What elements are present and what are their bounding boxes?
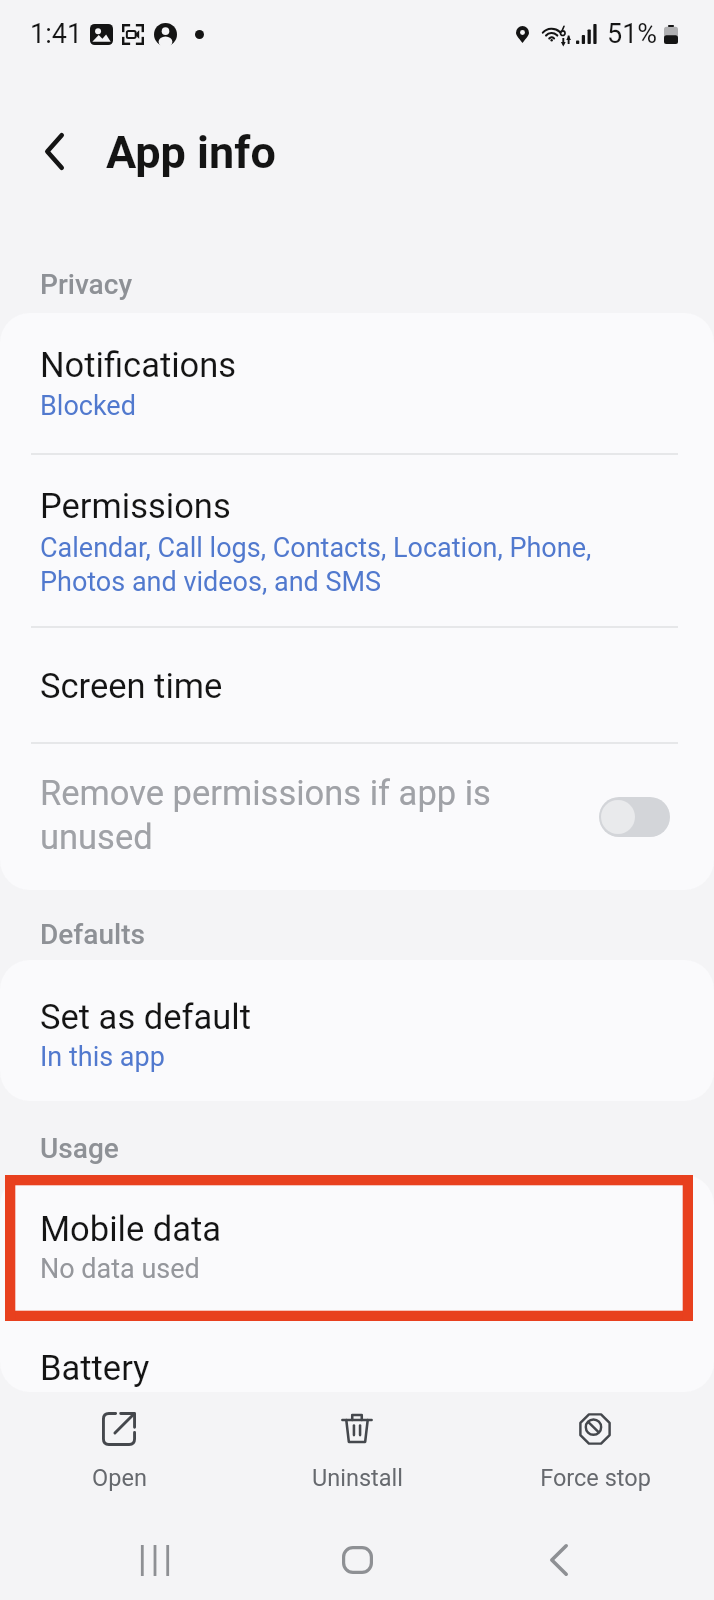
button[interactable]: Set as default	[0, 960, 714, 1101]
staticText: 1:41	[30, 18, 83, 50]
staticText: No data used	[40, 1253, 200, 1285]
staticText: Usage	[40, 1132, 119, 1165]
staticText: Open	[92, 1464, 147, 1492]
staticText: Screen time	[40, 666, 223, 706]
staticText: Privacy	[40, 268, 133, 301]
staticText: Defaults	[40, 918, 145, 951]
staticText: Blocked	[40, 390, 136, 422]
staticText: Calendar, Call logs, Contacts, Location,…	[40, 532, 592, 598]
button[interactable]: Remove permissions if app is unused	[0, 744, 714, 890]
staticText: Battery	[40, 1348, 150, 1388]
button[interactable]: Uninstall	[238, 1392, 476, 1512]
button[interactable]: Recents	[110, 1516, 200, 1600]
button[interactable]: Force stop	[476, 1392, 714, 1512]
staticText: Uninstall	[312, 1464, 403, 1492]
staticText: Mobile data	[40, 1209, 222, 1249]
staticText: Permissions	[40, 486, 231, 526]
button[interactable]: Mobile data	[0, 1175, 714, 1316]
button[interactable]: Back	[0, 97, 108, 205]
staticText: 51%	[607, 18, 658, 50]
button[interactable]: Back	[514, 1516, 604, 1600]
staticText: Set as default	[40, 997, 251, 1037]
button[interactable]: Screen time	[0, 628, 714, 742]
button[interactable]: Battery	[0, 1318, 714, 1392]
staticText: In this app	[40, 1041, 165, 1073]
button[interactable]: Notifications	[0, 313, 714, 453]
staticText: Force stop	[540, 1464, 651, 1492]
button[interactable]: Permissions	[0, 455, 714, 626]
button[interactable]: Home	[312, 1516, 402, 1600]
button[interactable]: Open	[0, 1392, 238, 1512]
staticText: Notifications	[40, 345, 237, 385]
staticText: Remove permissions if app is unused	[40, 773, 491, 857]
staticText: App info	[106, 126, 276, 179]
